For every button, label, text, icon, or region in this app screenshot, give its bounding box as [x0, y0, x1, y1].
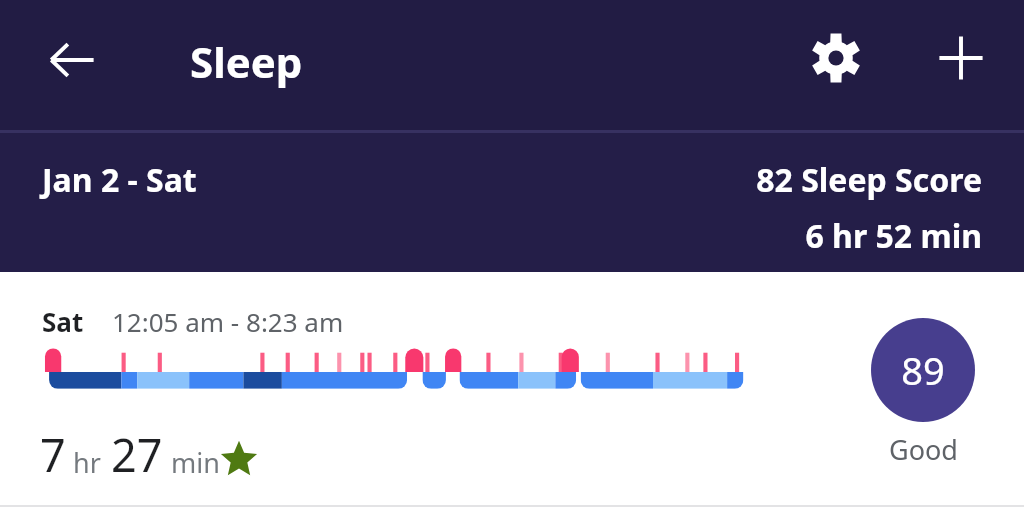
staticText: 7	[40, 424, 66, 485]
button[interactable]: Add	[925, 22, 997, 94]
staticText: 89	[901, 344, 945, 396]
staticText: Good	[889, 431, 958, 468]
staticText: min	[171, 444, 220, 481]
staticText: 12:05 am - 8:23 am	[112, 304, 344, 339]
button[interactable]: 89	[871, 318, 975, 468]
staticText: hr	[73, 444, 101, 481]
staticText: 27	[111, 424, 163, 485]
button[interactable]: Back	[36, 24, 108, 96]
staticText: Sat	[42, 304, 84, 339]
staticText: 82 Sleep Score	[756, 158, 982, 202]
button[interactable]: Sat	[0, 272, 1024, 515]
button[interactable]: Settings	[800, 22, 872, 94]
staticText: Jan 2 - Sat	[42, 158, 197, 202]
staticText: Sleep	[190, 33, 303, 90]
staticText: 6 hr 52 min	[805, 214, 982, 258]
